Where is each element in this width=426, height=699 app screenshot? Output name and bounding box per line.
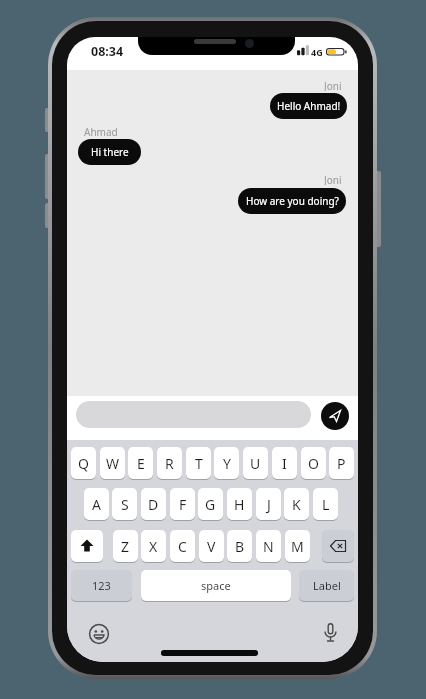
- staticText: C: [178, 537, 187, 556]
- staticText: W: [106, 454, 120, 473]
- button[interactable]: L: [313, 488, 338, 520]
- button[interactable]: [71, 530, 103, 562]
- staticText: How are you doing?: [246, 194, 339, 208]
- button[interactable]: M: [285, 530, 310, 562]
- staticText: E: [137, 454, 145, 473]
- button[interactable]: How are you doing?: [238, 188, 346, 214]
- button[interactable]: Q: [71, 447, 96, 479]
- staticText: K: [292, 495, 301, 514]
- button[interactable]: [321, 402, 349, 430]
- button[interactable]: 123: [71, 570, 132, 601]
- staticText: F: [179, 495, 187, 514]
- button[interactable]: D: [141, 488, 166, 520]
- staticText: N: [263, 537, 274, 556]
- button[interactable]: K: [284, 488, 309, 520]
- staticText: G: [205, 495, 216, 514]
- staticText: U: [250, 454, 261, 473]
- staticText: P: [337, 454, 346, 473]
- button[interactable]: Z: [113, 530, 138, 562]
- button[interactable]: H: [227, 488, 252, 520]
- button[interactable]: Hi there: [78, 139, 141, 165]
- staticText: L: [322, 495, 330, 514]
- button[interactable]: O: [301, 447, 326, 479]
- staticText: B: [235, 537, 245, 556]
- staticText: A: [92, 495, 101, 514]
- button[interactable]: J: [256, 488, 281, 520]
- button[interactable]: space: [141, 570, 291, 601]
- button[interactable]: T: [186, 447, 211, 479]
- button[interactable]: W: [100, 447, 125, 479]
- staticText: 123: [92, 578, 111, 593]
- staticText: H: [234, 495, 245, 514]
- button[interactable]: U: [243, 447, 268, 479]
- button[interactable]: X: [141, 530, 166, 562]
- button[interactable]: R: [157, 447, 182, 479]
- staticText: X: [149, 537, 158, 556]
- button[interactable]: Y: [214, 447, 239, 479]
- staticText: M: [291, 537, 304, 556]
- staticText: V: [207, 537, 216, 556]
- button[interactable]: Hello Ahmad!: [270, 93, 347, 119]
- staticText: J: [267, 495, 271, 514]
- staticText: I: [282, 454, 287, 473]
- button[interactable]: Label: [299, 570, 354, 601]
- button[interactable]: F: [170, 488, 195, 520]
- button[interactable]: P: [329, 447, 354, 479]
- button[interactable]: V: [199, 530, 224, 562]
- staticText: Z: [121, 537, 130, 556]
- staticText: D: [148, 495, 159, 514]
- staticText: O: [308, 454, 319, 473]
- staticText: Hello Ahmad!: [277, 99, 341, 113]
- staticText: 4G: [311, 46, 323, 58]
- button[interactable]: A: [84, 488, 109, 520]
- staticText: S: [121, 495, 129, 514]
- button[interactable]: [89, 624, 109, 644]
- button[interactable]: G: [198, 488, 223, 520]
- button[interactable]: [322, 530, 354, 562]
- button[interactable]: N: [256, 530, 281, 562]
- staticText: Y: [223, 454, 231, 473]
- button[interactable]: S: [112, 488, 137, 520]
- staticText: Joni: [324, 173, 342, 185]
- button[interactable]: B: [227, 530, 252, 562]
- staticText: R: [165, 454, 174, 473]
- staticText: 08:34: [91, 43, 124, 60]
- button[interactable]: C: [170, 530, 195, 562]
- staticText: Hi there: [91, 145, 129, 159]
- staticText: Label: [313, 578, 341, 593]
- staticText: Joni: [324, 79, 342, 91]
- staticText: Q: [78, 454, 89, 473]
- staticText: T: [195, 454, 203, 473]
- button[interactable]: [324, 623, 337, 644]
- button[interactable]: [76, 401, 311, 428]
- button[interactable]: E: [128, 447, 153, 479]
- button[interactable]: I: [272, 447, 297, 479]
- staticText: Ahmad: [84, 125, 118, 139]
- staticText: space: [201, 578, 231, 593]
